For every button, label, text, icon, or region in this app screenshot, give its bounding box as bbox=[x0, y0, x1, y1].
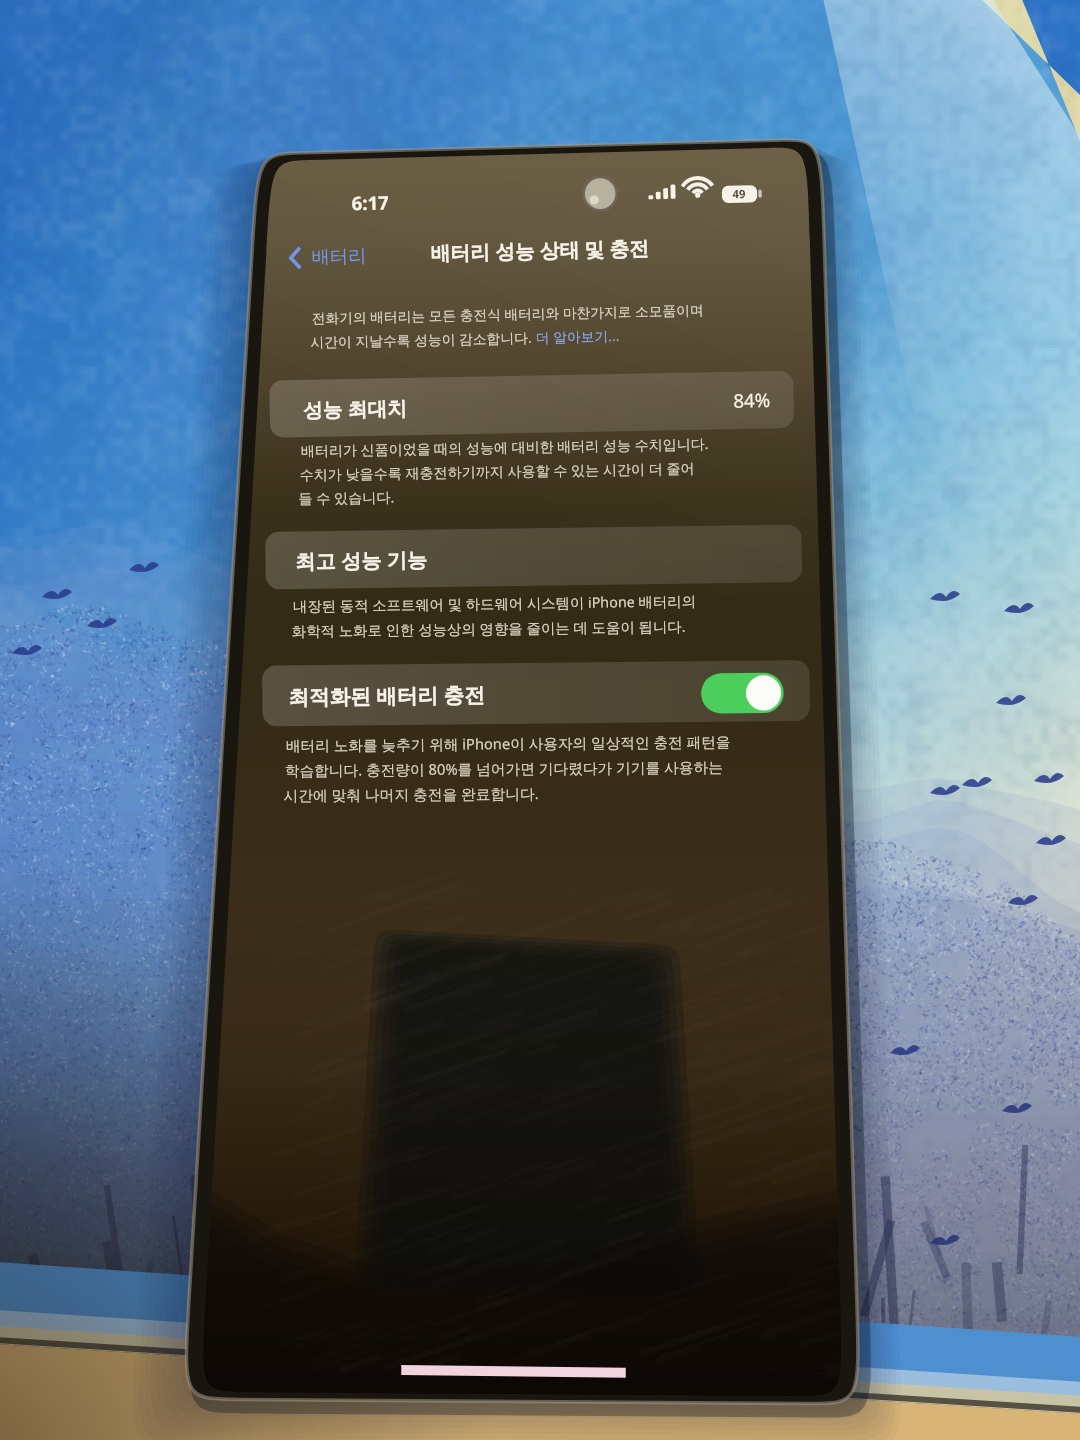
button[interactable]: 최적화된 배터리 충전 bbox=[262, 666, 812, 722]
button[interactable]: 최고 성능 기능 bbox=[266, 532, 804, 582]
button[interactable]: 더 알아보기 bbox=[538, 326, 644, 350]
button[interactable]: 성능 최대치 84퍼센트 bbox=[272, 368, 796, 418]
button[interactable]: 배터리 화면으로 돌아가기 bbox=[276, 232, 382, 264]
button[interactable]: 최적화된 배터리 충전 켜기 끄기 bbox=[699, 672, 788, 716]
